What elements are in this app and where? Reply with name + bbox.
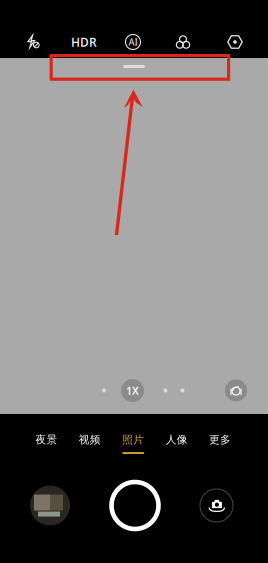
button[interactable]: 照片 bbox=[122, 420, 144, 454]
button[interactable]: Take photo bbox=[111, 482, 158, 529]
button[interactable]: 夜景 bbox=[35, 420, 57, 454]
button[interactable]: Open gallery bbox=[30, 485, 70, 525]
button[interactable]: Switch camera bbox=[200, 489, 233, 522]
button[interactable]: Filters bbox=[174, 34, 191, 50]
button[interactable]: Settings bbox=[226, 33, 243, 50]
staticText: 照片 bbox=[122, 433, 144, 446]
button[interactable]: 人像 bbox=[166, 420, 188, 454]
button[interactable]: HDR bbox=[71, 34, 97, 50]
staticText: 更多 bbox=[209, 433, 231, 446]
staticText: 人像 bbox=[166, 433, 188, 446]
button[interactable]: AI scene detection bbox=[124, 33, 141, 50]
button[interactable]: 更多 bbox=[209, 420, 231, 454]
button[interactable]: Scan document bbox=[225, 379, 247, 401]
staticText: 1X bbox=[126, 383, 139, 398]
button[interactable]: Zoom 1X bbox=[121, 379, 144, 402]
staticText: 夜景 bbox=[35, 433, 57, 446]
staticText: HDR bbox=[71, 34, 97, 50]
staticText: 视频 bbox=[79, 433, 101, 446]
button[interactable]: 视频 bbox=[79, 420, 101, 454]
staticText: AI bbox=[128, 36, 137, 48]
button[interactable]: Flash off bbox=[24, 33, 42, 51]
